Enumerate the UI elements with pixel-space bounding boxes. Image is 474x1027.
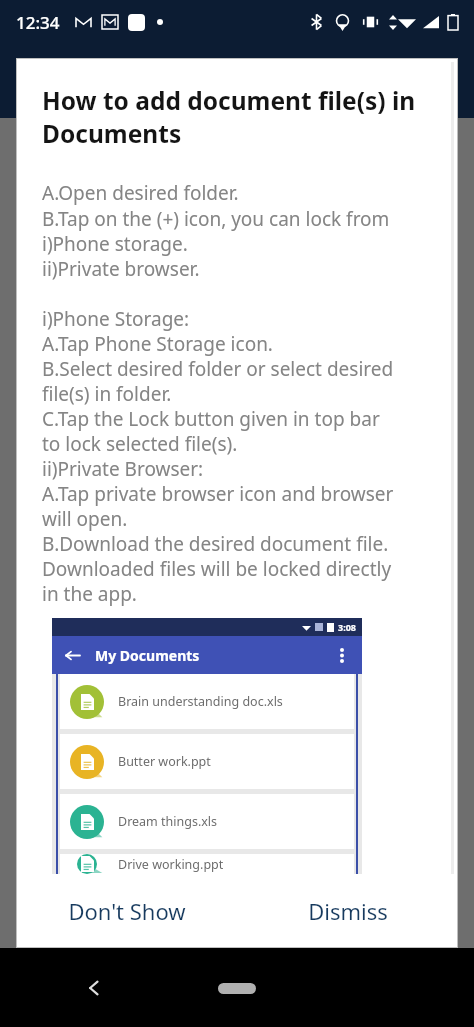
- staticText: Dismiss: [308, 896, 388, 926]
- button[interactable]: Home: [201, 971, 273, 1005]
- button[interactable]: Dream things.xls: [60, 794, 354, 849]
- button[interactable]: Back: [61, 644, 83, 666]
- staticText: A.Open desired folder. B.Tap on the (+) …: [42, 180, 394, 606]
- button[interactable]: Don't Show: [16, 874, 237, 948]
- staticText: 12:34: [16, 11, 60, 34]
- button[interactable]: Drive working.ppt: [60, 854, 354, 874]
- staticText: Brain understanding doc.xls: [118, 693, 283, 710]
- staticText: How to add document file(s) in Documents: [42, 84, 436, 150]
- staticText: Drive working.ppt: [118, 856, 224, 873]
- button[interactable]: Dismiss: [237, 874, 458, 948]
- staticText: 3:08: [338, 621, 356, 633]
- button[interactable]: Brain understanding doc.xls: [60, 674, 354, 729]
- button[interactable]: Butter work.ppt: [60, 734, 354, 789]
- button[interactable]: Back: [72, 966, 116, 1010]
- staticText: My Documents: [95, 646, 200, 665]
- staticText: Dream things.xls: [118, 813, 218, 830]
- staticText: Don't Show: [68, 896, 186, 926]
- staticText: Butter work.ppt: [118, 753, 211, 770]
- button[interactable]: More options: [331, 644, 353, 666]
